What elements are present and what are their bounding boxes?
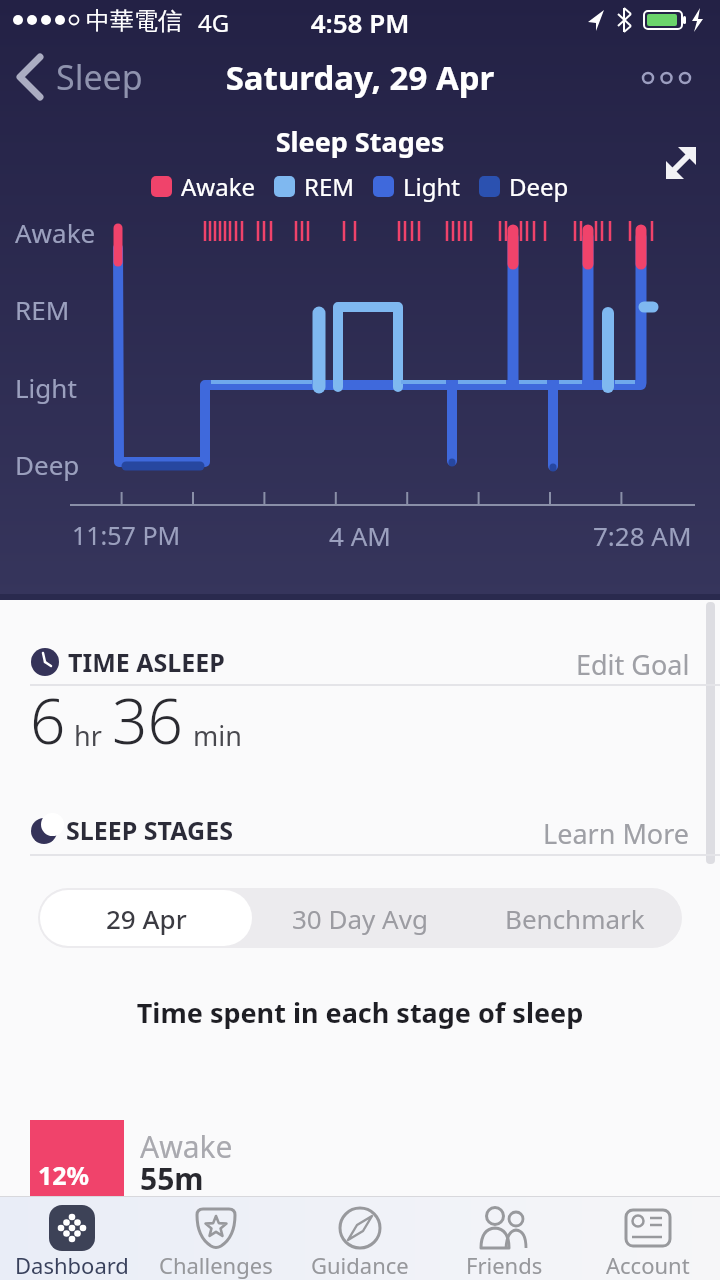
staticText: 4:58 PM	[0, 5, 720, 40]
staticText: Awake	[181, 170, 256, 203]
staticText: Saturday, 29 Apr	[0, 55, 720, 100]
button[interactable]: SLEEP STAGES	[30, 813, 233, 847]
staticText: 29 Apr	[106, 901, 187, 936]
staticText: REM	[15, 292, 70, 327]
staticText: 36	[112, 678, 183, 762]
staticText: 55m	[140, 1158, 204, 1199]
button[interactable]: Friends	[432, 1196, 576, 1280]
staticText: Deep	[15, 447, 80, 482]
button[interactable]: Learn More	[543, 815, 690, 852]
staticText: Light	[403, 170, 461, 203]
staticText: Time spent in each stage of sleep	[0, 994, 720, 1031]
staticText: 4G	[198, 6, 230, 39]
staticText: TIME ASLEEP	[68, 645, 225, 679]
staticText: 12%	[38, 1158, 90, 1192]
staticText: Guidance	[311, 1250, 409, 1280]
staticText: 4 AM	[0, 518, 720, 553]
staticText: Sleep	[56, 54, 143, 100]
staticText: REM	[304, 170, 355, 203]
staticText: 11:57 PM	[72, 518, 181, 552]
staticText: Challenges	[159, 1250, 273, 1280]
staticText: Light	[15, 370, 77, 405]
button[interactable]: Sleep	[16, 53, 143, 101]
button[interactable]: Dashboard	[0, 1196, 144, 1280]
button[interactable]: Challenges	[144, 1196, 288, 1280]
button[interactable]	[0, 45, 720, 115]
staticText: Account	[606, 1250, 690, 1280]
button[interactable]: Benchmark	[468, 888, 682, 948]
button[interactable]: Account	[576, 1196, 720, 1280]
staticText: Sleep Stages	[0, 123, 720, 160]
staticText: SLEEP STAGES	[66, 813, 233, 847]
button[interactable]: Guidance	[288, 1196, 432, 1280]
staticText: 中華電信	[86, 6, 182, 36]
button[interactable]: TIME ASLEEP	[30, 645, 225, 679]
button[interactable]: 29 Apr	[40, 890, 252, 946]
staticText: hr	[74, 717, 102, 754]
staticText: Benchmark	[505, 901, 645, 936]
staticText: Dashboard	[15, 1250, 129, 1280]
button[interactable]: Edit Goal	[576, 646, 690, 683]
staticText: min	[193, 717, 242, 754]
button[interactable]: 30 Day Avg	[252, 888, 468, 948]
staticText: 7:28 AM	[593, 518, 692, 553]
staticText: Friends	[466, 1250, 543, 1280]
staticText: 6	[30, 678, 66, 762]
staticText: 30 Day Avg	[292, 901, 428, 936]
staticText: Deep	[509, 170, 569, 203]
staticText: Awake	[15, 215, 96, 250]
staticText: Awake	[140, 1126, 233, 1167]
